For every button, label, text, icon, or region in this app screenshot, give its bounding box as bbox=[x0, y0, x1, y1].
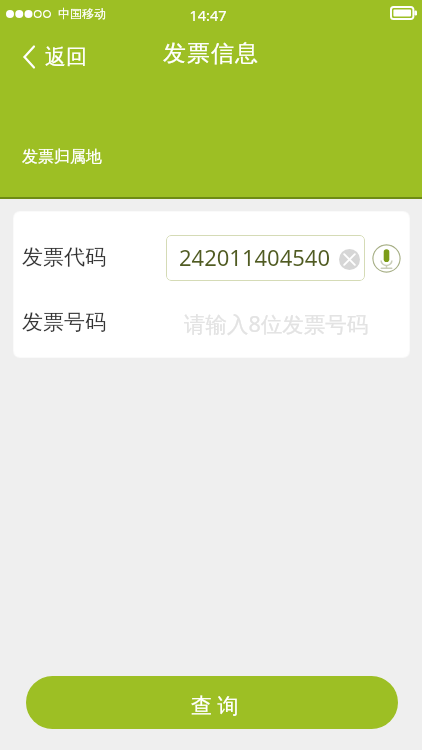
button[interactable]: 返回 bbox=[13, 38, 101, 76]
staticText: 发票信息 bbox=[0, 39, 422, 68]
staticText: 中国移动 bbox=[58, 6, 106, 21]
staticText: 返回 bbox=[45, 44, 87, 70]
button[interactable]: 发票归属地 bbox=[14, 139, 110, 175]
staticText: 14:47 bbox=[0, 5, 419, 25]
button[interactable]: 发票号码 bbox=[14, 288, 409, 357]
staticText: 发票归属地 bbox=[22, 147, 102, 167]
button[interactable]: 语音输入 bbox=[372, 244, 401, 273]
button[interactable]: 清除 bbox=[339, 249, 360, 270]
staticText: 发票号码 bbox=[22, 309, 106, 335]
button[interactable]: 242011404540 bbox=[166, 235, 365, 281]
staticText: 查询 bbox=[191, 693, 245, 719]
staticText: 发票代码 bbox=[22, 244, 106, 270]
staticText: 242011404540 bbox=[179, 242, 331, 272]
button[interactable]: 查询 bbox=[26, 676, 398, 729]
staticText: 请输入8位发票号码 bbox=[184, 309, 369, 338]
